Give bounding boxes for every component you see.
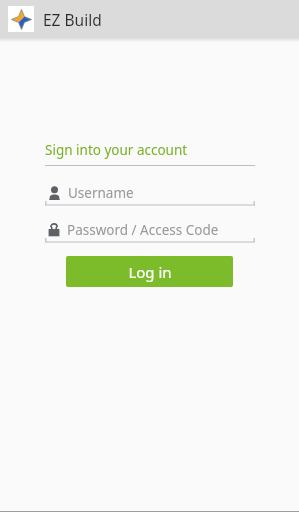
button[interactable]: App icon	[8, 6, 34, 32]
staticText: Sign into your account	[45, 141, 188, 159]
button[interactable]: Username	[45, 183, 255, 208]
staticText: Log in	[128, 262, 172, 282]
staticText: Password / Access Code	[67, 221, 219, 239]
button[interactable]: Log in	[66, 256, 233, 287]
button[interactable]: Password / Access Code	[45, 220, 255, 245]
staticText: Username	[68, 184, 134, 202]
staticText: EZ Build	[43, 9, 102, 30]
